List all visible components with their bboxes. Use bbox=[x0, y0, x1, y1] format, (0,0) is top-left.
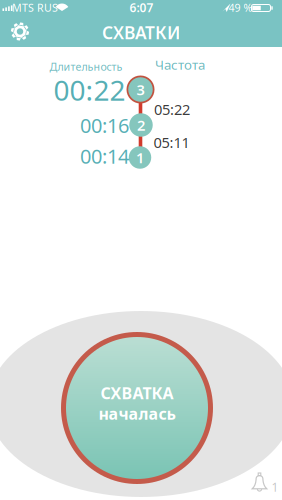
staticText: 1 bbox=[271, 479, 278, 495]
staticText: 00:16 bbox=[80, 112, 129, 139]
staticText: 00:14 bbox=[80, 143, 129, 169]
staticText: 3 bbox=[136, 80, 144, 99]
staticText: СХВАТКИ bbox=[102, 21, 180, 44]
staticText: началась bbox=[98, 403, 175, 424]
staticText: Длительность bbox=[49, 59, 122, 74]
button[interactable]: СХВАТКА bbox=[61, 332, 213, 484]
staticText: 2 bbox=[137, 115, 145, 135]
staticText: 6:07 bbox=[129, 0, 153, 15]
staticText: Частота bbox=[155, 56, 205, 73]
staticText: СХВАТКА bbox=[100, 382, 173, 404]
staticText: 49 % bbox=[228, 0, 252, 15]
staticText: 05:22 bbox=[154, 99, 190, 119]
staticText: MTS RUS bbox=[12, 0, 58, 15]
button[interactable]: Settings bbox=[9, 20, 31, 42]
staticText: 1 bbox=[136, 148, 144, 167]
button[interactable]: Reminders bbox=[249, 470, 269, 494]
staticText: 05:11 bbox=[153, 132, 189, 152]
staticText: 00:22 bbox=[53, 71, 125, 109]
